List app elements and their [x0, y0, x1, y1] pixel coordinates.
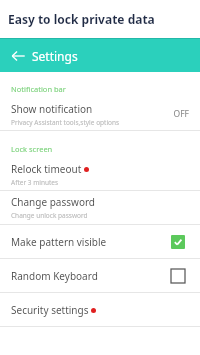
- staticText: Settings: [32, 48, 78, 64]
- staticText: Make pattern visible: [11, 235, 107, 249]
- staticText: Show notification: [11, 102, 93, 116]
- button[interactable]: Show notification: [0, 98, 200, 130]
- staticText: Notification bar: [11, 84, 66, 94]
- staticText: Security settings: [11, 303, 89, 317]
- staticText: After 3 minutes: [11, 178, 59, 187]
- staticText: Easy to lock private data: [8, 11, 155, 27]
- button[interactable]: Make pattern visible: [0, 225, 200, 258]
- button[interactable]: Make pattern visible toggle: [167, 231, 189, 253]
- staticText: Random Keyboard: [11, 269, 98, 283]
- staticText: OFF: [173, 108, 189, 120]
- button[interactable]: Security settings: [0, 293, 200, 326]
- button[interactable]: Relock timeout: [0, 158, 200, 190]
- staticText: Change unlock password: [11, 211, 88, 220]
- staticText: Relock timeout: [11, 162, 82, 176]
- staticText: Change password: [11, 195, 96, 209]
- button[interactable]: Back: [6, 44, 30, 68]
- staticText: Lock screen: [11, 144, 53, 154]
- button[interactable]: Random Keyboard: [0, 259, 200, 292]
- staticText: Privacy Assistant tools,style options: [11, 118, 120, 127]
- button[interactable]: Random Keyboard toggle: [167, 265, 189, 287]
- button[interactable]: Change password: [0, 191, 200, 224]
